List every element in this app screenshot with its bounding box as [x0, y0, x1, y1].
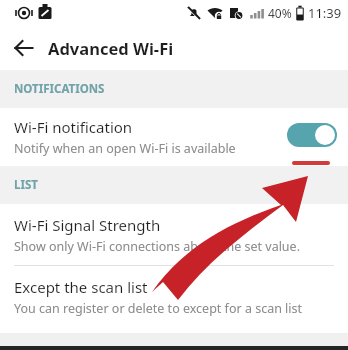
- staticText: Advanced Wi-Fi: [48, 37, 174, 59]
- staticText: You can register or delete to except for…: [14, 300, 303, 317]
- button[interactable]: Except the scan list: [0, 266, 348, 328]
- staticText: 11:39: [308, 4, 342, 22]
- staticText: Except the scan list: [14, 277, 148, 297]
- staticText: Show only Wi-Fi connections above the se…: [14, 238, 300, 255]
- staticText: NOTIFICATIONS: [14, 81, 105, 97]
- staticText: 40%: [268, 5, 292, 21]
- button[interactable]: Wi-Fi notification toggle: [287, 123, 337, 147]
- staticText: LIST: [14, 177, 38, 193]
- staticText: Wi-Fi notification: [14, 117, 133, 137]
- button[interactable]: Wi-Fi Signal Strength: [0, 204, 348, 266]
- staticText: Notify when an open Wi-Fi is available: [14, 140, 236, 157]
- button[interactable]: Wi-Fi notification: [0, 108, 348, 166]
- staticText: Wi-Fi Signal Strength: [14, 215, 161, 235]
- button[interactable]: Back: [8, 32, 40, 64]
